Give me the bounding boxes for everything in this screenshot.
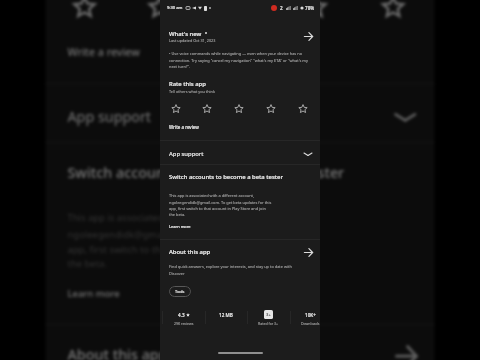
button[interactable]: Rate 2 stars (138, 0, 179, 27)
staticText: 29K reviews (174, 321, 194, 326)
staticText: 3+ (266, 312, 271, 318)
button[interactable]: Rate 5 stars (371, 0, 412, 27)
button[interactable]: Learn more (167, 222, 193, 231)
staticText: Learn more (169, 224, 191, 229)
staticText: This app is associated with a different … (67, 212, 318, 270)
staticText: 4.3 (178, 312, 185, 318)
button[interactable]: Write a review (63, 39, 145, 63)
staticText: About this app (169, 248, 211, 256)
button[interactable]: 12 MB (204, 308, 247, 319)
staticText: Downloads (301, 321, 320, 326)
staticText: Rated for 3+ (258, 321, 279, 326)
staticText: 10K+ (305, 312, 316, 318)
staticText: Switch accounts to become a beta tester (169, 173, 283, 181)
button[interactable]: Rate 4 stars (293, 0, 335, 27)
button[interactable]: About this app (302, 246, 314, 258)
button[interactable]: About this app (391, 340, 420, 360)
button[interactable]: App support (160, 143, 320, 164)
button[interactable]: 4.3 (162, 308, 205, 326)
staticText: About this app (67, 345, 170, 360)
button[interactable]: 10K+ (289, 308, 332, 326)
button[interactable]: Write a review (167, 122, 201, 132)
button[interactable]: Open what's new (302, 30, 314, 42)
staticText: Learn more (67, 287, 121, 299)
button[interactable]: Rate 2 stars (198, 100, 215, 117)
staticText: 12 MB (219, 312, 233, 318)
staticText: This app is associated with a different … (169, 193, 272, 217)
staticText: App support (67, 107, 152, 126)
button[interactable]: Rate 3 stars (230, 100, 247, 117)
staticText: Write a review (169, 124, 199, 130)
staticText: App support (169, 150, 204, 158)
staticText: Last updated Oct 31, 2023 (169, 38, 216, 43)
staticText: Write a review (67, 44, 140, 58)
staticText: 2 (280, 5, 283, 11)
staticText: Find quick answers, explore your interes… (169, 264, 308, 276)
button[interactable]: Learn more (63, 282, 126, 304)
staticText: • Use voice commands while navigating — … (169, 51, 312, 69)
button[interactable]: Rate 4 stars (262, 100, 279, 117)
staticText: 9:30 am (167, 5, 183, 11)
staticText: Tools (175, 289, 185, 294)
staticText: What's new (169, 30, 202, 38)
button[interactable]: Rate 5 stars (294, 100, 311, 117)
button[interactable]: Rate 1 stars (63, 0, 104, 27)
button[interactable]: Rate 1 stars (167, 100, 184, 117)
staticText: 78% (305, 5, 315, 11)
staticText: Tell others what you think (169, 89, 215, 94)
staticText: Switch accounts to become a beta tester (67, 163, 344, 182)
button[interactable]: 3+ (247, 308, 290, 326)
staticText: Rate this app (169, 80, 206, 88)
button[interactable]: App support (46, 90, 434, 141)
button[interactable]: Tools (169, 286, 191, 297)
